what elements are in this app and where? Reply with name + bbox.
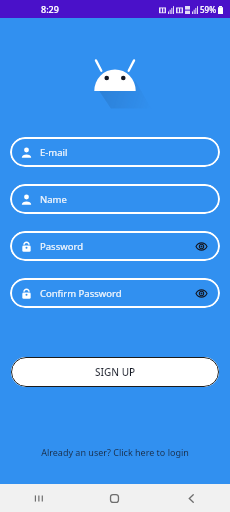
- button[interactable]: Show password: [193, 238, 209, 254]
- staticText: 59%: [200, 4, 216, 15]
- button[interactable]: Name: [10, 184, 220, 214]
- button[interactable]: Back: [153, 484, 230, 512]
- staticText: Confirm Password: [40, 287, 122, 300]
- button[interactable]: Password: [10, 231, 220, 261]
- button[interactable]: Recents: [0, 484, 76, 512]
- button[interactable]: Already an user? Click here to login: [31, 442, 199, 462]
- staticText: SIGN UP: [95, 365, 136, 379]
- staticText: Password: [40, 240, 83, 253]
- staticText: Already an user? Click here to login: [41, 446, 189, 458]
- button[interactable]: Show password: [193, 285, 209, 301]
- staticText: Name: [40, 193, 67, 206]
- button[interactable]: SIGN UP: [11, 357, 219, 387]
- button[interactable]: Confirm Password: [10, 278, 220, 308]
- button[interactable]: Home: [76, 484, 153, 512]
- staticText: 8:29: [41, 3, 59, 15]
- staticText: E-mail: [40, 146, 68, 159]
- button[interactable]: E-mail: [10, 137, 220, 167]
